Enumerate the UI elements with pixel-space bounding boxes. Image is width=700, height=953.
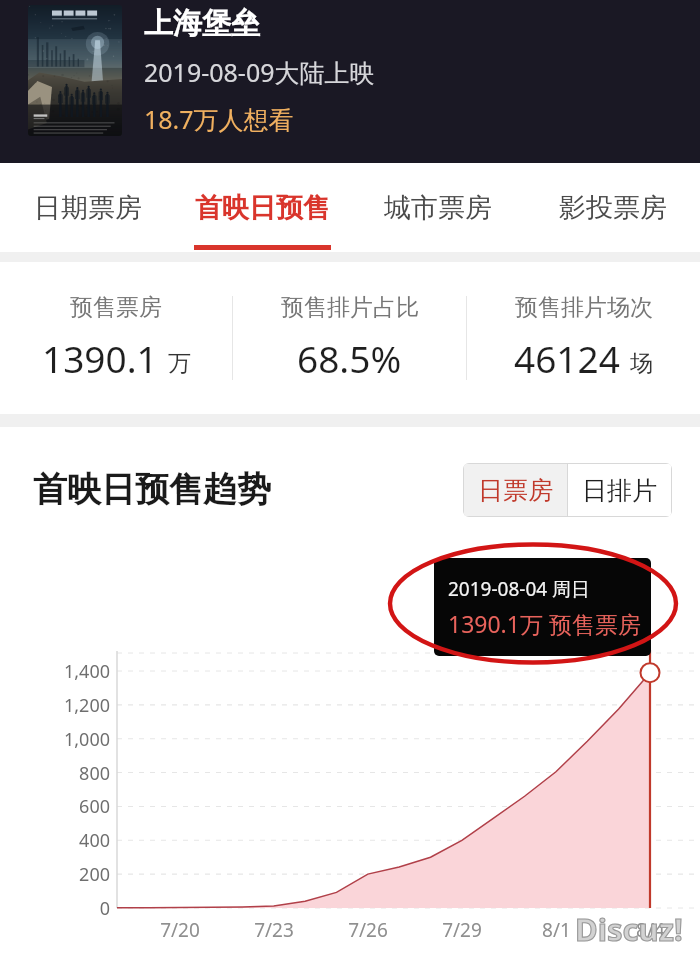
staticText: 1390.1万 预售票房 xyxy=(448,608,641,639)
staticText: 68.5% xyxy=(297,333,402,383)
button[interactable]: 首映日预售 xyxy=(175,163,350,252)
staticText: 8/1 xyxy=(542,917,571,943)
staticText: 2019-08-04 周日 xyxy=(448,576,591,602)
staticText: 预售排片占比 xyxy=(281,293,419,322)
staticText: 1,000 xyxy=(63,727,110,752)
staticText: 1,400 xyxy=(63,659,110,684)
button[interactable]: Movie poster xyxy=(28,5,122,136)
staticText: 7/26 xyxy=(348,917,388,943)
staticText: 日期票房 xyxy=(34,191,142,225)
staticText: 0 xyxy=(99,896,110,921)
staticText: 200 xyxy=(79,862,110,887)
staticText: 城市票房 xyxy=(384,191,492,225)
staticText: 1,200 xyxy=(63,693,110,718)
staticText: 万 xyxy=(168,349,191,378)
staticText: Discuz! xyxy=(575,908,683,950)
button[interactable]: 预售排片场次 xyxy=(467,293,700,383)
staticText: 场 xyxy=(630,349,653,378)
staticText: 400 xyxy=(79,828,110,853)
button[interactable]: 预售排片占比 xyxy=(233,293,466,383)
button[interactable]: 城市票房 xyxy=(350,163,525,252)
staticText: 预售排片场次 xyxy=(515,293,653,322)
staticText: 日排片 xyxy=(582,475,657,506)
staticText: 18.7万人想看 xyxy=(144,102,294,136)
button[interactable]: 预售票房 xyxy=(0,293,232,383)
staticText: 预售票房 xyxy=(70,293,162,322)
staticText: 46124 xyxy=(514,333,620,383)
button[interactable]: 日期票房 xyxy=(0,163,175,252)
staticText: 7/23 xyxy=(254,917,294,943)
staticText: 8/4 xyxy=(636,917,665,943)
staticText: 600 xyxy=(79,794,110,819)
button[interactable]: 日排片 xyxy=(568,464,671,516)
button[interactable]: 影投票房 xyxy=(525,163,700,252)
staticText: 影投票房 xyxy=(559,191,667,225)
staticText: 上海堡垒 xyxy=(144,5,260,42)
staticText: 2019-08-09大陆上映 xyxy=(144,55,375,89)
staticText: Discuz! xyxy=(575,908,683,950)
staticText: 7/20 xyxy=(160,917,200,943)
button[interactable]: 2019-08-04 周日 xyxy=(434,558,651,656)
staticText: 日票房 xyxy=(478,475,553,506)
staticText: 首映日预售 xyxy=(195,191,330,225)
staticText: 7/29 xyxy=(442,917,482,943)
staticText: 800 xyxy=(79,761,110,786)
staticText: 1390.1 xyxy=(42,333,158,383)
button[interactable]: 日票房 xyxy=(464,464,567,516)
staticText: 首映日预售趋势 xyxy=(33,468,271,511)
